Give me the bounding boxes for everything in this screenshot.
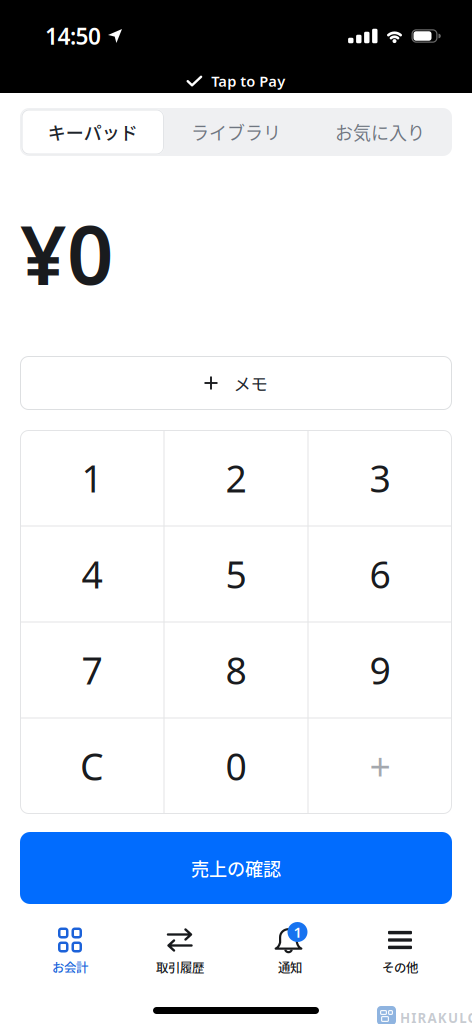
staticText: 通知 [278,958,302,976]
staticText: 2 [225,453,246,503]
button[interactable]: 5 [164,526,308,622]
button[interactable]: 1 [20,430,164,526]
button[interactable]: 8 [164,622,308,718]
button[interactable]: 7 [20,622,164,718]
staticText: C [80,741,104,791]
staticText: + [369,741,390,791]
staticText: 5 [225,549,246,599]
staticText: 3 [369,453,390,503]
button[interactable]: その他 [345,927,455,976]
button[interactable]: キーパッド [21,109,164,154]
button[interactable]: 売上の確認 [20,832,452,904]
button[interactable]: 0 [164,718,308,814]
staticText: 1 [81,453,102,503]
staticText: 4 [81,549,102,599]
button[interactable]: 6 [308,526,452,622]
staticText: 8 [225,645,246,695]
staticText: ライブラリ [191,119,281,145]
staticText: 0 [225,741,246,791]
staticText: 売上の確認 [191,855,281,881]
staticText: ¥0 [20,199,114,307]
staticText: 14:50 [45,21,101,51]
staticText: お会計 [52,958,88,976]
staticText: 1 [293,922,301,942]
button[interactable]: 2 [164,430,308,526]
button[interactable]: お気に入り [308,108,452,156]
staticText: キーパッド [48,119,138,145]
staticText: Tap to Pay [211,71,285,91]
button[interactable]: 3 [308,430,452,526]
button[interactable]: 1 [235,927,345,976]
button[interactable]: + [308,718,452,814]
staticText: 9 [369,645,390,695]
button[interactable]: お会計 [15,927,125,976]
staticText: 7 [81,645,102,695]
staticText: 6 [369,549,390,599]
button[interactable]: 9 [308,622,452,718]
button[interactable]: C [20,718,164,814]
staticText: その他 [382,958,418,976]
button[interactable]: メモ [20,356,452,410]
staticText: メモ [233,370,267,396]
staticText: HIRAKULOG [400,1009,472,1024]
button[interactable]: 4 [20,526,164,622]
staticText: 取引履歴 [156,958,204,976]
staticText: お気に入り [335,119,425,145]
button[interactable]: 取引履歴 [125,927,235,976]
button[interactable]: ライブラリ [164,108,308,156]
